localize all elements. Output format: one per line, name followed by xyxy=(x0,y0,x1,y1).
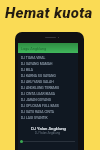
staticText: DJ Yalan Angklung xyxy=(35,131,61,135)
staticText: DJ OPLOSAN FULL BASS xyxy=(21,104,59,108)
button[interactable]: DJ SAYANG MAMAH xyxy=(18,61,78,67)
button[interactable]: DJ TIARA VIRAL xyxy=(18,55,78,61)
staticText: DJ AKU YANG SALAH xyxy=(21,80,54,84)
button[interactable]: DJ CINTA LUAR BIASA xyxy=(18,91,78,97)
staticText: DJ CINTA LUAR BIASA xyxy=(21,92,55,96)
staticText: DJ JARAN GOYANG xyxy=(21,98,51,102)
staticText: DJ KARNA SU SAYANG xyxy=(21,74,56,78)
button[interactable]: DJ JARAN GOYANG xyxy=(18,97,78,103)
button[interactable]: DJ BILA xyxy=(18,67,78,73)
staticText: DJ SAYANG MAMAH xyxy=(21,62,53,66)
staticText: DJ TIARA VIRAL xyxy=(21,56,46,60)
button[interactable]: DJ KARNA SU SAYANG xyxy=(18,73,78,79)
button[interactable]: Seek xyxy=(18,138,78,144)
button[interactable]: DJ LAGI SYANTIK xyxy=(18,115,78,121)
staticText: Hemat kuota xyxy=(5,4,93,22)
button[interactable]: Lagu Angklung xyxy=(18,43,78,53)
staticText: DJ SATU RASA CINTA xyxy=(21,110,54,114)
button[interactable]: DJ ANGKLUNG TERBARU xyxy=(18,85,78,91)
staticText: DJ LAGI SYANTIK xyxy=(21,116,48,120)
staticText: DJ ANGKLUNG TERBARU xyxy=(21,86,60,90)
staticText: Lagu Angklung xyxy=(21,46,47,50)
staticText: DJ BILA xyxy=(21,68,34,72)
staticText: DJ Yalan Angklung xyxy=(31,126,66,131)
button[interactable]: DJ SATU RASA CINTA xyxy=(18,109,78,115)
button[interactable]: DJ AKU YANG SALAH xyxy=(18,79,78,85)
button[interactable]: DJ OPLOSAN FULL BASS xyxy=(18,103,78,109)
